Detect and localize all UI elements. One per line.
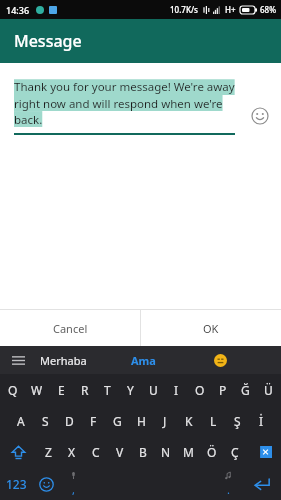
staticText: U [149, 382, 158, 398]
button[interactable]: Ş [225, 405, 249, 436]
button[interactable]: . [215, 468, 242, 500]
button[interactable]: O [188, 374, 211, 405]
button[interactable]: V [108, 436, 131, 468]
staticText: H+ [225, 4, 236, 15]
staticText: 123 [6, 476, 27, 492]
staticText: D [65, 413, 74, 429]
button[interactable]: F [81, 405, 105, 436]
staticText: B [139, 444, 147, 460]
staticText: V [116, 444, 124, 460]
staticText: N [161, 444, 171, 460]
button[interactable]: M [177, 436, 200, 468]
button[interactable]: Q [1, 374, 25, 405]
staticText: İ [259, 413, 264, 429]
button[interactable]: Ö [200, 436, 223, 468]
staticText: Z [45, 444, 52, 460]
staticText: T [104, 382, 111, 398]
button[interactable]: W [25, 374, 49, 405]
button[interactable]: H [129, 405, 153, 436]
staticText: Y [127, 382, 134, 398]
button[interactable]: Z [36, 436, 60, 468]
staticText: 68% [260, 4, 276, 15]
button[interactable]: OK [141, 310, 281, 346]
staticText: S [42, 413, 49, 429]
button[interactable]: N [154, 436, 177, 468]
button[interactable]: D [57, 405, 81, 436]
staticText: J [163, 413, 167, 429]
staticText: 14:36 [6, 4, 30, 16]
staticText: Ş [234, 413, 241, 429]
staticText: K [185, 413, 193, 429]
button[interactable]: P [211, 374, 234, 405]
button[interactable]: Backspace [246, 436, 281, 468]
staticText: Ö [207, 444, 217, 460]
staticText: R [81, 382, 89, 398]
staticText: H [137, 413, 146, 429]
button[interactable]: E [49, 374, 73, 405]
button[interactable]: , [60, 468, 87, 500]
button[interactable]: U [142, 374, 165, 405]
button[interactable]: Ç [223, 436, 246, 468]
staticText: Ü [264, 382, 273, 398]
staticText: . [227, 482, 230, 497]
button[interactable]: Ğ [234, 374, 257, 405]
button[interactable]: T [96, 374, 119, 405]
staticText: Cancel [53, 321, 88, 336]
button[interactable]: Shift [0, 436, 36, 468]
staticText: F [90, 413, 97, 429]
staticText: O [195, 382, 205, 398]
staticText: A [17, 413, 25, 429]
staticText: E [58, 382, 65, 398]
button[interactable]: J [153, 405, 177, 436]
staticText: X [68, 444, 76, 460]
staticText: I [174, 382, 179, 398]
staticText: , [72, 482, 75, 497]
button[interactable]: C [84, 436, 108, 468]
button[interactable]: A [8, 405, 33, 436]
button[interactable]: Enter [242, 468, 281, 500]
button[interactable]: Emoji [247, 103, 273, 129]
staticText: G [113, 413, 122, 429]
button[interactable]: G [105, 405, 129, 436]
staticText: Ç [231, 444, 239, 460]
button[interactable]: Merhaba [40, 353, 87, 368]
button[interactable]: L [201, 405, 225, 436]
button[interactable]: Emoji keyboard [33, 468, 60, 500]
button[interactable]: Cancel [0, 310, 140, 346]
button[interactable]: Emoji suggestion [210, 350, 230, 370]
button[interactable]: K [177, 405, 201, 436]
staticText: P [219, 382, 227, 398]
button[interactable]: X [60, 436, 84, 468]
staticText: 10.7K/s [170, 4, 198, 15]
button[interactable]: B [131, 436, 154, 468]
staticText: OK [203, 321, 219, 336]
button[interactable]: 123 [0, 468, 33, 500]
staticText: C [92, 444, 100, 460]
button[interactable]: R [73, 374, 96, 405]
staticText: Message [14, 30, 82, 52]
staticText: Thank you for your message! We're away r… [14, 79, 235, 127]
button[interactable]: S [33, 405, 57, 436]
button[interactable]: I [165, 374, 188, 405]
button[interactable]: Ama [131, 353, 156, 368]
staticText: M [183, 444, 194, 460]
button[interactable]: Y [119, 374, 142, 405]
button[interactable]: Ü [257, 374, 280, 405]
staticText: Q [8, 382, 18, 398]
button[interactable]: İ [249, 405, 273, 436]
staticText: W [31, 382, 43, 398]
button[interactable]: Menu [6, 348, 30, 372]
staticText: Ğ [241, 382, 250, 398]
staticText: L [210, 413, 217, 429]
